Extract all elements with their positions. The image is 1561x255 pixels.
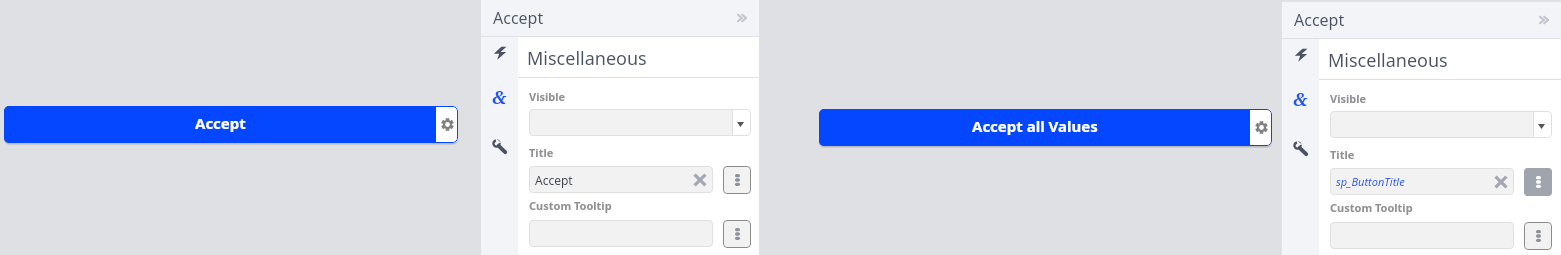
staticText: Visible bbox=[529, 89, 566, 104]
staticText: & bbox=[492, 85, 507, 110]
button[interactable]: Bindings bbox=[1282, 70, 1319, 129]
staticText: Title bbox=[1330, 147, 1355, 162]
button[interactable]: Events bbox=[481, 37, 518, 68]
button[interactable]: Accept bbox=[4, 106, 458, 143]
button[interactable]: Settings bbox=[481, 127, 518, 165]
staticText: Miscellaneous bbox=[1328, 48, 1448, 73]
staticText: Custom Tooltip bbox=[1330, 200, 1413, 215]
button[interactable]: More options bbox=[723, 166, 751, 194]
button[interactable]: Collapse bbox=[1536, 12, 1552, 28]
button[interactable]: Accept bbox=[1282, 2, 1561, 38]
button[interactable]: Settings bbox=[1282, 129, 1319, 167]
staticText: Accept bbox=[1294, 9, 1345, 31]
staticText: Visible bbox=[1330, 91, 1367, 106]
staticText: Title bbox=[529, 145, 554, 160]
button[interactable]: Clear bbox=[694, 174, 706, 186]
button[interactable]: Clear bbox=[1495, 176, 1507, 188]
staticText: Miscellaneous bbox=[527, 46, 647, 71]
staticText: sp_ButtonTitle bbox=[1336, 174, 1495, 189]
staticText: Accept bbox=[493, 7, 544, 29]
staticText: Custom Tooltip bbox=[529, 198, 612, 213]
button[interactable]: Bindings bbox=[481, 68, 518, 127]
button[interactable]: Accept bbox=[481, 0, 759, 36]
staticText: & bbox=[1293, 87, 1308, 112]
button[interactable]: More options bbox=[1524, 168, 1552, 196]
button[interactable]: Accept all Values bbox=[819, 109, 1272, 146]
button[interactable] bbox=[529, 109, 751, 136]
button[interactable]: Events bbox=[1282, 39, 1319, 70]
button[interactable]: Settings bbox=[436, 106, 458, 143]
button[interactable]: Settings bbox=[1250, 109, 1272, 146]
button[interactable] bbox=[529, 220, 713, 247]
button[interactable] bbox=[1330, 111, 1552, 138]
button[interactable]: Collapse bbox=[734, 10, 750, 26]
staticText: Accept bbox=[535, 172, 694, 188]
button[interactable]: More options bbox=[1524, 222, 1552, 250]
button[interactable]: More options bbox=[723, 220, 751, 248]
button[interactable]: sp_ButtonTitle bbox=[1330, 168, 1514, 195]
button[interactable] bbox=[1330, 222, 1514, 249]
staticText: Accept all Values bbox=[972, 116, 1098, 136]
button[interactable]: Accept bbox=[529, 166, 713, 193]
staticText: Accept bbox=[195, 113, 246, 133]
